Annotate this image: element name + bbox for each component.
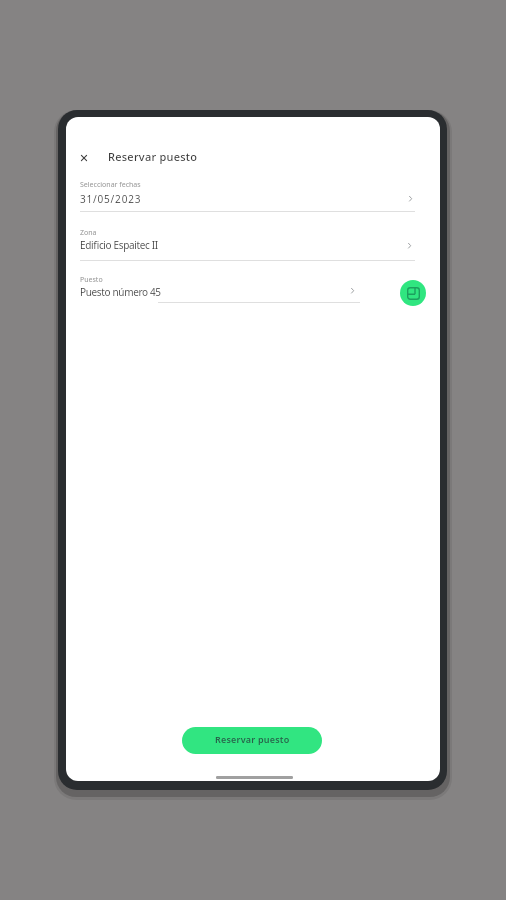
button[interactable] [78, 226, 416, 262]
button[interactable] [78, 273, 416, 309]
staticText: Reservar puesto [108, 149, 198, 164]
staticText: 31/05/2023 [80, 192, 142, 206]
button[interactable] [74, 148, 94, 168]
staticText: Puesto número 45 [80, 285, 161, 299]
button[interactable]: Reservar puesto [182, 727, 322, 754]
staticText: Puesto [80, 275, 103, 285]
staticText: Edificio Espaitec II [80, 238, 158, 252]
button[interactable] [400, 280, 426, 306]
staticText: Seleccionar fechas [80, 180, 141, 190]
staticText: Reservar puesto [215, 733, 290, 745]
staticText: Zona [80, 228, 97, 238]
button[interactable] [78, 178, 416, 214]
